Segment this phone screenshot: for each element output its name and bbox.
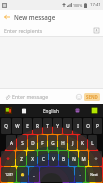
staticText: X [31, 156, 34, 162]
button[interactable]: G [48, 135, 57, 150]
staticText: . [79, 172, 81, 178]
button[interactable]: K [78, 135, 87, 150]
button[interactable]: A [6, 135, 16, 150]
staticText: M [81, 156, 86, 162]
staticText: F [41, 140, 44, 146]
staticText: 100% [73, 3, 83, 8]
button[interactable]: Clipboard [16, 104, 32, 117]
staticText: J [72, 140, 74, 146]
staticText: A [10, 140, 13, 146]
staticText: T [46, 123, 49, 129]
staticText: H [61, 140, 65, 146]
staticText: E [26, 123, 29, 129]
staticText: 17:41 [90, 2, 101, 8]
staticText: 123!? [5, 173, 13, 177]
staticText: O [86, 123, 90, 129]
staticText: Enter recipients [4, 27, 92, 34]
button[interactable]: P [93, 118, 102, 134]
button[interactable]: Sticker [69, 104, 86, 117]
button[interactable]: , [29, 167, 39, 182]
staticText: English [43, 108, 59, 114]
staticText: Enter message [12, 93, 74, 100]
staticText: U [66, 123, 70, 129]
button[interactable]: D [28, 135, 37, 150]
staticText: D [31, 140, 35, 146]
button[interactable]: Back [0, 10, 14, 24]
button[interactable]: U [63, 118, 72, 134]
button[interactable]: L [88, 135, 97, 150]
button[interactable]: 123!? [1, 167, 16, 182]
staticText: R [36, 123, 39, 129]
button[interactable]: SEND [84, 93, 100, 101]
staticText: G [51, 140, 55, 146]
button[interactable]: J [68, 135, 77, 150]
staticText: V [52, 156, 55, 162]
staticText: P [96, 123, 99, 129]
button[interactable]: Keyboard theme [0, 104, 16, 117]
button[interactable]: Enter recipients [0, 24, 103, 36]
staticText: S [21, 140, 24, 146]
staticText: B [62, 156, 65, 162]
button[interactable]: S [17, 135, 27, 150]
staticText: W [15, 123, 20, 129]
button[interactable]: M [79, 151, 88, 166]
button[interactable] [40, 167, 74, 182]
staticText: K [81, 140, 84, 146]
button[interactable]: H [58, 135, 67, 150]
staticText: Next [90, 172, 98, 177]
staticText: SEND [86, 94, 98, 100]
button[interactable]: I [73, 118, 82, 134]
button[interactable]: Y [53, 118, 62, 134]
staticText: L [91, 140, 94, 146]
button[interactable]: E [23, 118, 32, 134]
button[interactable]: C [38, 151, 48, 166]
staticText: N [72, 156, 76, 162]
button[interactable]: N [69, 151, 78, 166]
staticText: , [33, 172, 35, 178]
staticText: I [77, 123, 79, 129]
button[interactable]: Attach [3, 93, 11, 101]
button[interactable]: Settings [86, 104, 103, 117]
staticText: Y [56, 123, 59, 129]
staticText: New message [14, 13, 56, 21]
button[interactable]: F [38, 135, 47, 150]
staticText: Q [4, 123, 8, 129]
button[interactable]: Shift [1, 151, 15, 166]
button[interactable]: R [33, 118, 42, 134]
button[interactable]: B [59, 151, 68, 166]
button[interactable]: Q [1, 118, 11, 134]
staticText: Z [20, 156, 23, 162]
staticText: 🙂 [20, 173, 25, 177]
button[interactable]: T [43, 118, 52, 134]
button[interactable]: V [49, 151, 58, 166]
button[interactable]: 🙂 [17, 167, 28, 182]
button[interactable]: O [83, 118, 92, 134]
button[interactable]: W [12, 118, 22, 134]
button[interactable]: Next [86, 167, 102, 182]
staticText: C [42, 156, 45, 162]
button[interactable]: X [27, 151, 37, 166]
button[interactable]: Z [16, 151, 26, 166]
button[interactable]: Emoji [74, 92, 83, 101]
button[interactable]: Delete [89, 151, 102, 166]
button[interactable]: . [75, 167, 85, 182]
button[interactable]: English [32, 104, 69, 117]
button[interactable]: Add contact [92, 26, 100, 34]
